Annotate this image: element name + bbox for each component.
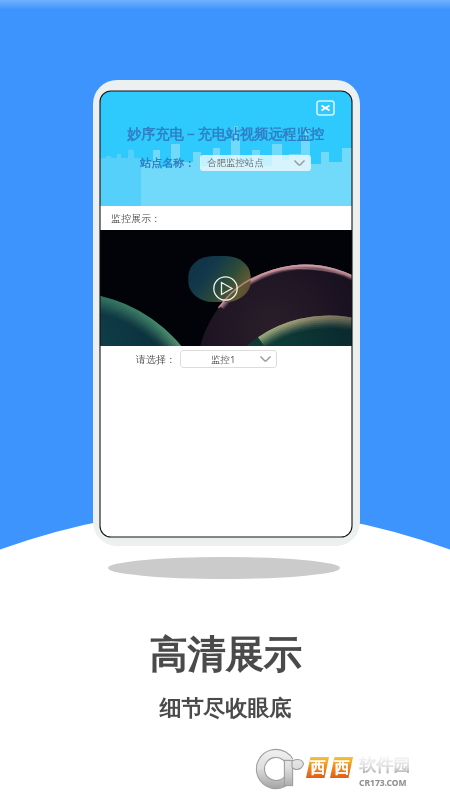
button[interactable]: 监控1 [180,350,277,368]
staticText: 监控展示： [111,212,161,225]
button[interactable]: Play video [213,276,238,301]
staticText: 软件园 [359,755,410,776]
staticText: 细节尽收眼底 [159,695,291,723]
staticText: 西 [334,759,349,778]
staticText: 西 [310,759,325,778]
staticText: 站点名称： [140,156,195,170]
button[interactable]: 合肥监控站点 [200,155,311,171]
staticText: 监控1 [211,353,236,366]
staticText: CR173.COM [359,777,407,789]
staticText: 请选择： [136,353,176,366]
staticText: 合肥监控站点 [207,157,264,169]
button[interactable]: Close [317,101,334,115]
staticText: 高清展示 [149,631,301,679]
staticText: 妙序充电－充电站视频远程监控 [127,125,325,143]
